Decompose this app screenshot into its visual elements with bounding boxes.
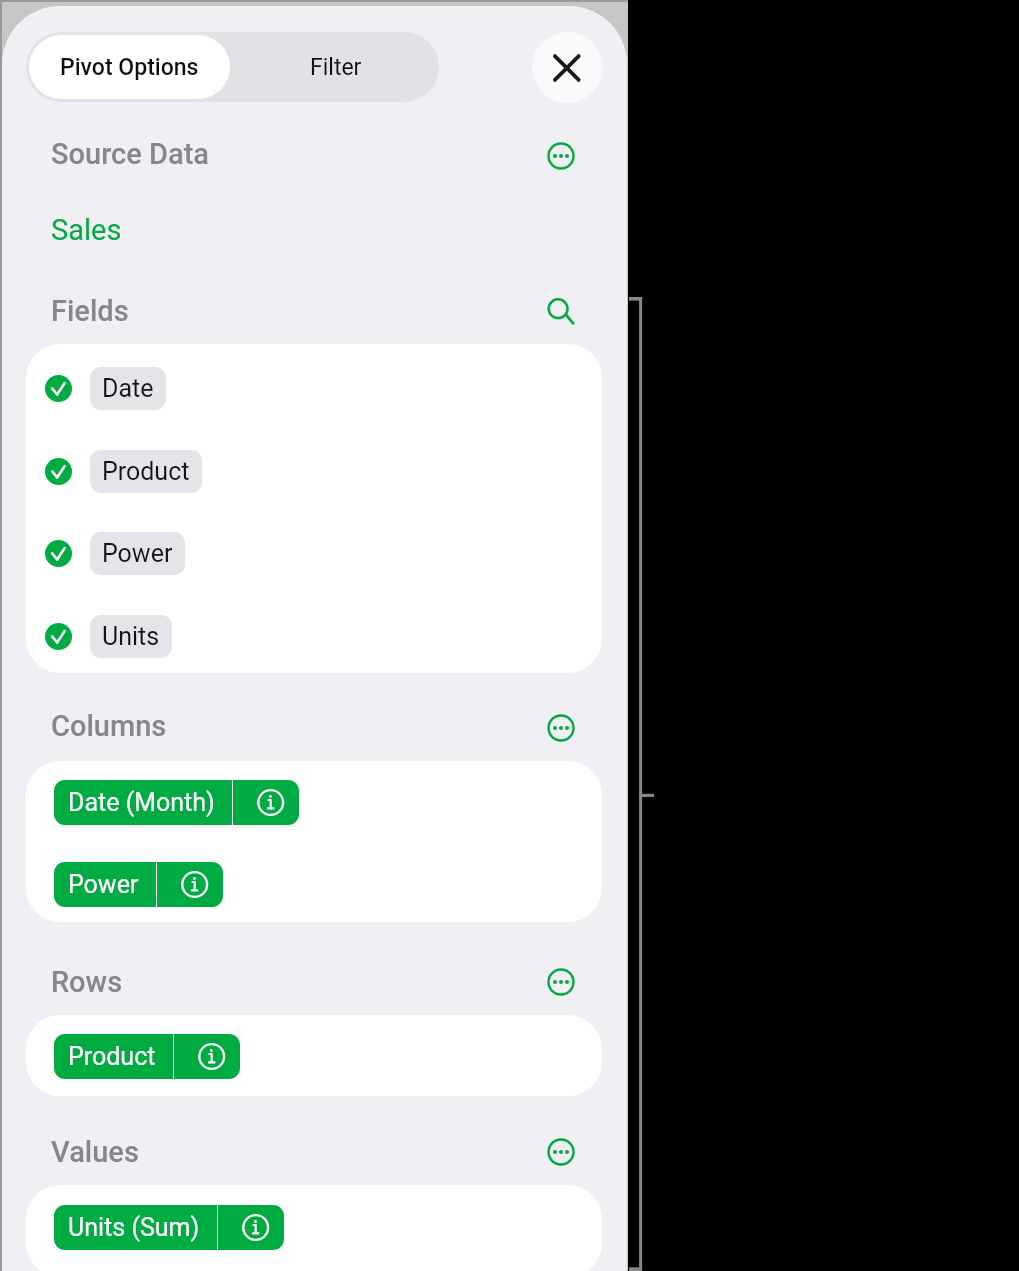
staticText: Fields bbox=[51, 294, 129, 328]
button[interactable]: Columns bbox=[51, 709, 167, 743]
button[interactable]: Units (Sum) bbox=[54, 1205, 284, 1250]
staticText: Units bbox=[102, 622, 160, 651]
staticText: Source Data bbox=[51, 137, 210, 171]
staticText: Rows bbox=[51, 965, 123, 999]
button[interactable]: Fields bbox=[51, 294, 129, 328]
button[interactable]: Date bbox=[26, 364, 166, 412]
staticText: Power bbox=[68, 870, 139, 899]
button[interactable]: Rows bbox=[51, 965, 123, 999]
button[interactable]: More options bbox=[533, 954, 589, 1010]
button[interactable]: Units bbox=[26, 612, 172, 660]
staticText: Pivot Options bbox=[60, 54, 199, 81]
staticText: Values bbox=[51, 1135, 139, 1169]
button[interactable]: Product bbox=[26, 447, 202, 495]
staticText: Product bbox=[102, 457, 190, 486]
staticText: Sales bbox=[51, 213, 122, 247]
button[interactable]: Sales bbox=[51, 213, 122, 247]
staticText: Product bbox=[68, 1042, 156, 1071]
button[interactable]: Pivot Options bbox=[29, 35, 230, 99]
button[interactable]: More options bbox=[533, 1124, 589, 1180]
button[interactable]: Date (Month) bbox=[54, 780, 299, 825]
button[interactable]: Search bbox=[533, 282, 589, 338]
staticText: Units (Sum) bbox=[68, 1213, 200, 1242]
staticText: Date bbox=[102, 374, 154, 403]
button[interactable]: Source Data bbox=[51, 137, 210, 171]
button[interactable]: More options bbox=[533, 700, 589, 756]
staticText: Date (Month) bbox=[68, 788, 215, 817]
button[interactable]: More options bbox=[533, 128, 589, 184]
staticText: Power bbox=[102, 539, 173, 568]
button[interactable]: Close bbox=[532, 32, 603, 103]
button[interactable]: Values bbox=[51, 1135, 139, 1169]
staticText: Filter bbox=[310, 54, 362, 81]
button[interactable]: Filter bbox=[233, 32, 439, 102]
staticText: Columns bbox=[51, 709, 167, 743]
button[interactable]: Power bbox=[54, 862, 223, 907]
button[interactable]: Power bbox=[26, 529, 185, 577]
button[interactable]: Product bbox=[54, 1034, 240, 1079]
